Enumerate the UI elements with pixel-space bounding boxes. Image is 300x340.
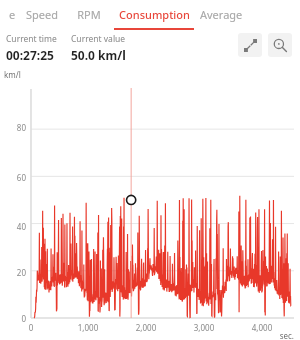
- button[interactable]: Average consumption: [196, 0, 300, 30]
- staticText: 0: [16, 322, 46, 333]
- staticText: 50.0 km/l: [71, 47, 126, 63]
- button[interactable]: Fit to screen: [238, 33, 262, 57]
- button[interactable]: RPM: [66, 0, 112, 30]
- staticText: 3,000: [189, 322, 219, 333]
- button[interactable]: Zoom: [268, 33, 292, 57]
- staticText: Current time: [6, 33, 57, 45]
- button[interactable]: Consumption: [112, 0, 196, 30]
- staticText: 60: [4, 172, 26, 183]
- staticText: km/l: [4, 69, 21, 80]
- staticText: 40: [4, 221, 26, 232]
- button[interactable]: e: [0, 0, 18, 30]
- staticText: RPM: [77, 7, 101, 22]
- staticText: Current value: [71, 33, 126, 45]
- staticText: sec.: [264, 330, 294, 340]
- staticText: e: [9, 7, 16, 22]
- staticText: Average consumption: [200, 7, 300, 22]
- staticText: 00:27:25: [6, 47, 54, 63]
- staticText: 20: [4, 267, 26, 278]
- staticText: Consumption: [119, 7, 190, 22]
- staticText: 0: [4, 313, 26, 324]
- staticText: 2,000: [131, 322, 161, 333]
- staticText: 4,000: [247, 322, 277, 333]
- staticText: 1,000: [73, 322, 103, 333]
- staticText: 80: [4, 122, 26, 133]
- button[interactable]: Speed: [18, 0, 66, 30]
- staticText: Speed: [26, 7, 58, 22]
